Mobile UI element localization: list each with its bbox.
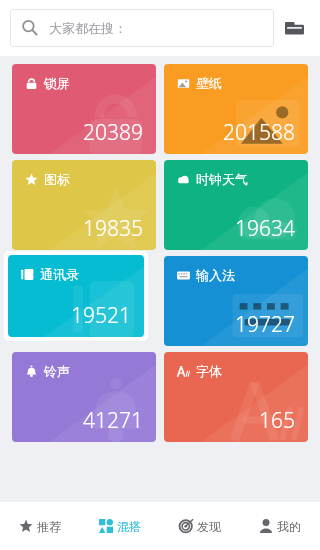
staticText: 壁纸 <box>196 75 222 91</box>
staticText: 19835 <box>83 214 143 243</box>
button[interactable]: 输入法 <box>164 256 308 346</box>
staticText: 201588 <box>223 118 295 147</box>
staticText: 大家都在搜： <box>49 20 127 36</box>
button[interactable]: 混搭 <box>80 502 160 550</box>
staticText: 19727 <box>235 310 295 339</box>
staticText: 通讯录 <box>40 266 79 282</box>
staticText: 165 <box>259 406 295 435</box>
staticText: 图标 <box>44 171 70 187</box>
staticText: 20389 <box>83 118 143 147</box>
staticText: 锁屏 <box>44 75 70 91</box>
button[interactable]: 时钟天气 <box>164 160 308 250</box>
button[interactable]: 发现 <box>160 502 240 550</box>
button[interactable]: 大家都在搜： <box>10 9 274 47</box>
staticText: 发现 <box>197 519 221 534</box>
staticText: 输入法 <box>196 267 235 283</box>
button[interactable]: 推荐 <box>0 502 80 550</box>
button[interactable]: 铃声 <box>12 352 156 442</box>
staticText: 19634 <box>235 214 295 243</box>
staticText: 41271 <box>83 406 143 435</box>
staticText: 19521 <box>71 301 131 330</box>
staticText: 字体 <box>196 363 222 379</box>
button[interactable]: 图标 <box>12 160 156 250</box>
button[interactable]: Folder <box>274 8 314 48</box>
staticText: 我的 <box>277 519 301 534</box>
staticText: 混搭 <box>117 519 141 534</box>
staticText: 铃声 <box>44 363 70 379</box>
button[interactable]: 通讯录 <box>8 255 144 337</box>
button[interactable]: 我的 <box>240 502 320 550</box>
staticText: 推荐 <box>37 519 61 534</box>
staticText: 时钟天气 <box>196 171 248 187</box>
button[interactable]: 锁屏 <box>12 64 156 154</box>
button[interactable]: 壁纸 <box>164 64 308 154</box>
button[interactable]: 字体 <box>164 352 308 442</box>
